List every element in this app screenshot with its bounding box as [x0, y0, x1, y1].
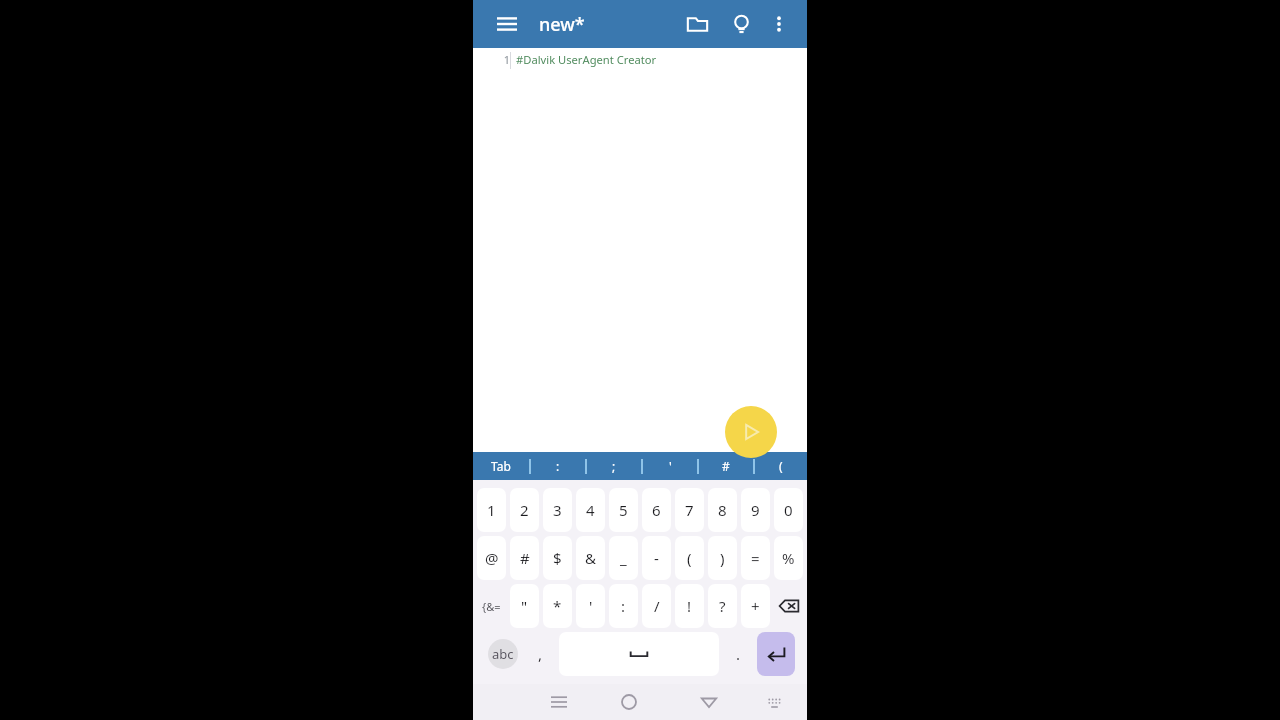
button[interactable]: $ — [543, 536, 572, 580]
button[interactable]: 2 — [510, 488, 539, 532]
staticText: #Dalvik UserAgent Creator — [516, 52, 807, 67]
button[interactable]: " — [510, 584, 539, 628]
staticText: & — [585, 548, 596, 568]
staticText: * — [553, 596, 562, 616]
button[interactable]: ( — [755, 452, 807, 480]
button[interactable]: % — [774, 536, 803, 580]
button[interactable]: / — [642, 584, 671, 628]
staticText: = — [751, 548, 760, 568]
button[interactable]: Run — [725, 406, 777, 458]
button[interactable]: @ — [477, 536, 506, 580]
button[interactable]: 5 — [609, 488, 638, 532]
button[interactable]: More options — [759, 4, 799, 44]
staticText: + — [751, 596, 760, 616]
staticText: . — [736, 644, 741, 664]
button[interactable]: - — [642, 536, 671, 580]
staticText: Tab — [491, 458, 511, 474]
staticText: - — [654, 548, 659, 568]
button[interactable]: 4 — [576, 488, 605, 532]
button[interactable]: , — [523, 632, 557, 676]
staticText: $ — [553, 548, 562, 568]
staticText: ' — [589, 596, 593, 616]
staticText: 8 — [718, 500, 727, 520]
button[interactable]: abc — [483, 632, 523, 676]
staticText: ( — [687, 548, 692, 568]
staticText: 6 — [652, 500, 661, 520]
button[interactable]: Home — [589, 684, 669, 720]
staticText: # — [520, 548, 530, 568]
button[interactable]: ' — [576, 584, 605, 628]
button[interactable]: _ — [609, 536, 638, 580]
button[interactable]: + — [741, 584, 770, 628]
button[interactable]: Hint — [721, 4, 761, 44]
staticText: {&= — [482, 599, 501, 614]
staticText: abc — [492, 645, 514, 663]
button[interactable]: Enter — [757, 632, 795, 676]
staticText: ? — [719, 596, 726, 616]
staticText: ( — [779, 458, 783, 474]
staticText: ) — [720, 548, 725, 568]
button[interactable]: 9 — [741, 488, 770, 532]
button[interactable]: # — [699, 452, 753, 480]
staticText: @ — [485, 548, 499, 568]
staticText: # — [722, 458, 730, 474]
staticText: 4 — [586, 500, 595, 520]
button[interactable]: Switch keyboard — [749, 684, 799, 720]
button[interactable]: {&= — [475, 584, 508, 628]
button[interactable]: 7 — [675, 488, 704, 532]
button[interactable]: ? — [708, 584, 737, 628]
staticText: % — [782, 548, 795, 568]
button[interactable]: ; — [587, 452, 641, 480]
button[interactable]: ) — [708, 536, 737, 580]
staticText: 1 — [487, 500, 496, 520]
staticText: 7 — [685, 500, 694, 520]
staticText: new* — [539, 12, 585, 37]
button[interactable]: Back — [669, 684, 749, 720]
button[interactable]: & — [576, 536, 605, 580]
button[interactable]: 8 — [708, 488, 737, 532]
button[interactable]: 0 — [774, 488, 803, 532]
button[interactable]: ( — [675, 536, 704, 580]
staticText: ! — [687, 596, 692, 616]
button[interactable]: Recents — [529, 684, 589, 720]
staticText: ' — [669, 458, 672, 474]
staticText: 1 — [503, 52, 510, 67]
button[interactable] — [559, 632, 719, 676]
button[interactable]: ' — [643, 452, 697, 480]
button[interactable]: * — [543, 584, 572, 628]
button[interactable]: Tab — [473, 452, 529, 480]
button[interactable]: ! — [675, 584, 704, 628]
button[interactable]: # — [510, 536, 539, 580]
button[interactable]: 3 — [543, 488, 572, 532]
staticText: 9 — [751, 500, 760, 520]
staticText: 5 — [619, 500, 628, 520]
staticText: 0 — [784, 500, 793, 520]
staticText: 2 — [520, 500, 529, 520]
staticText: / — [654, 596, 660, 616]
button[interactable]: : — [609, 584, 638, 628]
button[interactable]: Backspace — [772, 584, 805, 628]
button[interactable]: 1 — [477, 488, 506, 532]
staticText: " — [521, 596, 528, 616]
staticText: 3 — [553, 500, 562, 520]
button[interactable]: . — [721, 632, 755, 676]
staticText: : — [556, 458, 560, 474]
button[interactable]: Menu — [487, 4, 527, 44]
staticText: : — [621, 596, 626, 616]
button[interactable]: Open folder — [677, 4, 717, 44]
button[interactable]: 6 — [642, 488, 671, 532]
staticText: , — [538, 644, 543, 664]
staticText: ; — [612, 458, 616, 474]
button[interactable]: = — [741, 536, 770, 580]
button[interactable]: : — [531, 452, 585, 480]
staticText: _ — [620, 548, 627, 568]
